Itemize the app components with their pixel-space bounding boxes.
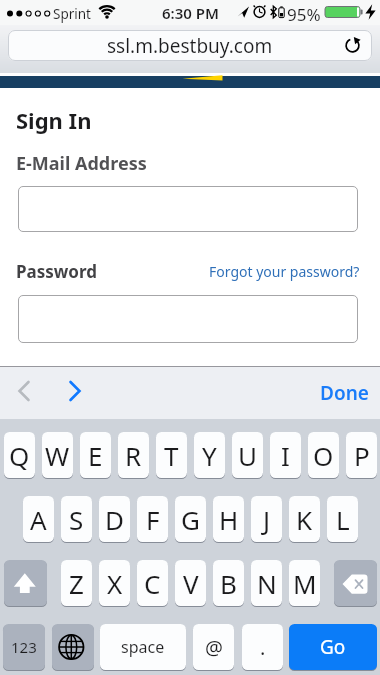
button[interactable]: P [346,432,377,478]
button[interactable] [340,32,366,59]
button[interactable]: M [289,560,320,606]
button[interactable]: 123 [3,624,45,670]
button[interactable]: N [251,560,282,606]
button[interactable] [12,378,36,408]
staticText: I [281,438,290,473]
staticText: E [88,438,103,473]
staticText: M [293,566,317,601]
staticText: L [336,502,350,537]
staticText: . [260,634,266,661]
button[interactable]: E [80,432,111,478]
button[interactable]: W [42,432,73,478]
staticText: Q [9,438,30,473]
staticText: @ [205,634,223,661]
button[interactable]: C [137,560,168,606]
button[interactable]: A [23,496,54,542]
button[interactable]: O [308,432,339,478]
staticText: O [313,438,334,473]
staticText: G [181,502,200,537]
button[interactable]: Done [320,380,369,406]
button[interactable]: K [289,496,320,542]
staticText: U [238,438,258,473]
staticText: Z [69,566,84,601]
button[interactable]: Y [194,432,225,478]
button[interactable]: Q [4,432,35,478]
staticText: Sign In [16,105,92,135]
staticText: V [183,566,199,601]
button[interactable]: . [242,624,283,670]
staticText: 95% [287,3,321,26]
staticText: Sprint [53,5,91,23]
button[interactable] [334,560,377,606]
staticText: 123 [11,637,37,657]
button[interactable]: H [213,496,244,542]
staticText: Y [202,438,217,473]
button[interactable]: Forgot your password? [209,262,360,281]
button[interactable]: B [213,560,244,606]
button[interactable]: S [61,496,92,542]
button[interactable]: I [270,432,301,478]
button[interactable]: F [137,496,168,542]
staticText: H [219,502,239,537]
button[interactable] [18,295,358,343]
button[interactable]: V [175,560,206,606]
button[interactable]: T [156,432,187,478]
staticText: T [164,438,179,473]
staticText: D [105,502,124,537]
staticText: Password [16,260,97,283]
button[interactable] [18,186,358,232]
staticText: A [30,502,47,537]
button[interactable]: G [175,496,206,542]
button[interactable]: J [251,496,282,542]
staticText: R [125,438,142,473]
button[interactable]: Go [289,624,377,670]
button[interactable] [63,378,87,408]
staticText: C [144,566,161,601]
staticText: B [220,566,237,601]
staticText: P [354,438,370,473]
staticText: W [45,438,70,473]
staticText: ssl.m.bestbuy.com [107,33,273,59]
button[interactable]: R [118,432,149,478]
button[interactable] [8,30,372,61]
button[interactable]: @ [193,624,234,670]
staticText: N [257,566,277,601]
button[interactable] [52,624,94,670]
button[interactable]: U [232,432,263,478]
button[interactable]: L [327,496,358,542]
staticText: Done [320,380,369,406]
staticText: J [263,502,271,537]
staticText: E-Mail Address [16,151,147,176]
staticText: X [107,566,123,601]
button[interactable]: D [99,496,130,542]
staticText: K [296,502,313,537]
staticText: 6:30 PM [162,3,219,23]
staticText: F [146,502,160,537]
staticText: space [121,636,165,658]
button[interactable]: Z [61,560,92,606]
button[interactable]: space [100,624,186,670]
button[interactable]: X [99,560,130,606]
staticText: S [69,502,84,537]
staticText: Go [320,634,346,660]
button[interactable] [4,560,47,606]
